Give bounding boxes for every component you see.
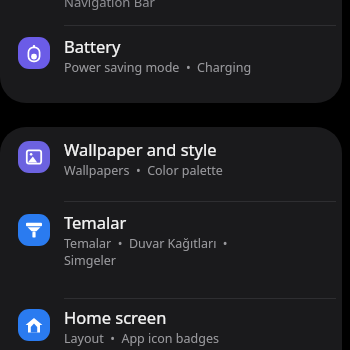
staticText: Wallpapers • Color palette <box>64 162 223 179</box>
staticText: Navigation Bar <box>64 0 155 11</box>
staticText: Wallpaper and style <box>64 138 217 160</box>
staticText: Home screen <box>64 306 167 328</box>
staticText: Temalar • Duvar Kağıtları • Simgeler <box>64 235 228 268</box>
button[interactable]: Temalar <box>0 202 342 298</box>
staticText: Temalar <box>64 211 127 233</box>
staticText: Battery <box>64 35 121 57</box>
button[interactable]: Wallpaper and style <box>0 131 342 201</box>
button[interactable]: Battery <box>0 26 342 103</box>
staticText: Layout • App icon badges <box>64 330 219 347</box>
button[interactable]: Home screen <box>0 299 342 350</box>
staticText: Power saving mode • Charging <box>64 59 252 76</box>
button[interactable]: Navigation Bar <box>0 0 342 25</box>
